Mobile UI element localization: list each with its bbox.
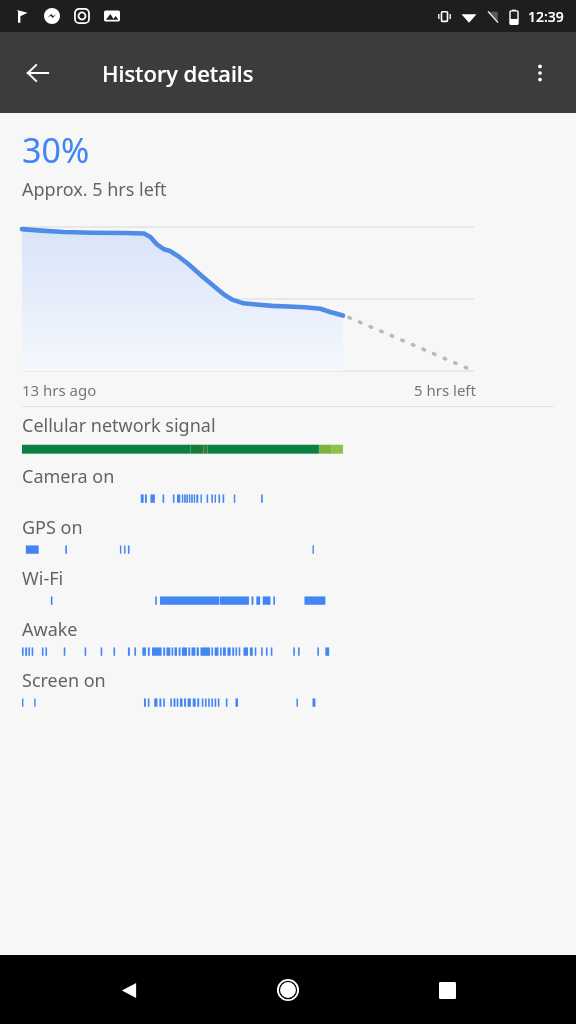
- button[interactable]: Back: [10, 45, 66, 101]
- staticText: 30%: [22, 127, 90, 173]
- staticText: GPS on: [22, 515, 83, 540]
- staticText: Camera on: [22, 464, 115, 489]
- staticText: 12:39: [528, 7, 564, 26]
- staticText: Cellular network signal: [22, 413, 216, 438]
- button[interactable]: More options: [512, 45, 568, 101]
- button[interactable]: Home: [258, 960, 318, 1020]
- staticText: 5 hrs left: [414, 380, 476, 400]
- staticText: History details: [102, 58, 254, 88]
- button[interactable]: Recent apps: [417, 960, 477, 1020]
- staticText: Awake: [22, 617, 78, 642]
- button[interactable]: Back: [99, 960, 159, 1020]
- staticText: 13 hrs ago: [22, 380, 97, 400]
- staticText: Approx. 5 hrs left: [22, 177, 167, 202]
- staticText: Wi-Fi: [22, 566, 64, 591]
- staticText: Screen on: [22, 668, 106, 693]
